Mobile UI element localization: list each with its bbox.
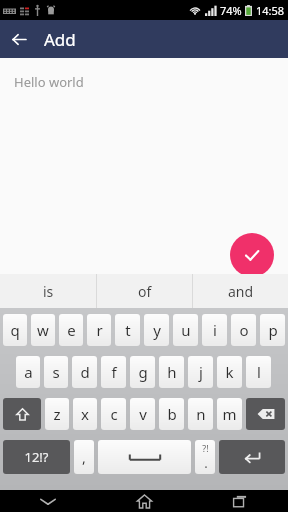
button[interactable]: i (202, 314, 227, 346)
button[interactable]: and (193, 274, 288, 308)
staticText: Add (44, 28, 76, 51)
button[interactable]: Back (0, 490, 96, 512)
button[interactable]: is (0, 274, 96, 308)
button[interactable]: w (31, 314, 55, 346)
staticText: 74% (220, 3, 242, 18)
button[interactable]: u (173, 314, 198, 346)
button[interactable]: a (16, 356, 40, 388)
staticText: ?! (202, 442, 209, 454)
staticText: u (181, 320, 191, 340)
staticText: s (52, 362, 60, 382)
staticText: Hello world (14, 73, 84, 91)
staticText: j (199, 362, 203, 382)
button[interactable]: q (3, 314, 27, 346)
button[interactable]: Backspace (246, 398, 285, 430)
staticText: 14:58 (256, 3, 285, 18)
button[interactable]: e (59, 314, 83, 346)
button[interactable]: s (44, 356, 68, 388)
staticText: k (225, 362, 234, 382)
button[interactable]: r (87, 314, 111, 346)
staticText: g (138, 362, 148, 382)
button[interactable]: , (74, 440, 94, 474)
button[interactable]: ?! (195, 440, 215, 474)
staticText: f (111, 362, 117, 382)
button[interactable]: g (130, 356, 155, 388)
button[interactable]: 12!? (3, 440, 70, 474)
button[interactable]: Confirm (230, 233, 274, 277)
staticText: i (213, 320, 217, 340)
staticText: v (139, 404, 147, 424)
staticText: . (204, 454, 208, 472)
button[interactable]: n (188, 398, 213, 430)
staticText: is (43, 282, 54, 301)
staticText: w (37, 320, 49, 340)
button[interactable]: d (72, 356, 97, 388)
button[interactable]: v (130, 398, 155, 430)
staticText: t (125, 320, 131, 340)
button[interactable]: Recents (192, 490, 288, 512)
staticText: h (167, 362, 177, 382)
button[interactable]: j (188, 356, 213, 388)
button[interactable]: c (101, 398, 126, 430)
staticText: and (228, 282, 254, 301)
staticText: c (110, 404, 118, 424)
staticText: d (80, 362, 90, 382)
staticText: e (67, 320, 76, 340)
staticText: , (82, 448, 86, 467)
staticText: z (53, 404, 61, 424)
staticText: p (268, 320, 278, 340)
button[interactable]: o (231, 314, 256, 346)
button[interactable]: f (101, 356, 126, 388)
button[interactable]: z (45, 398, 69, 430)
staticText: r (96, 320, 103, 340)
button[interactable]: m (217, 398, 242, 430)
button[interactable]: Home (96, 490, 192, 512)
staticText: 12!? (24, 448, 49, 466)
staticText: b (167, 404, 177, 424)
staticText: q (10, 320, 20, 340)
button[interactable]: Shift (3, 398, 41, 430)
staticText: l (257, 362, 261, 382)
button[interactable]: k (217, 356, 242, 388)
button[interactable]: Space (98, 440, 191, 474)
staticText: m (222, 404, 237, 424)
staticText: a (24, 362, 33, 382)
staticText: y (153, 320, 161, 340)
button[interactable]: b (159, 398, 184, 430)
button[interactable]: t (115, 314, 140, 346)
button[interactable]: Back (0, 20, 38, 58)
staticText: n (196, 404, 206, 424)
button[interactable]: x (73, 398, 97, 430)
staticText: of (138, 282, 152, 301)
button[interactable]: y (144, 314, 169, 346)
button[interactable]: of (97, 274, 192, 308)
staticText: x (81, 404, 89, 424)
button[interactable]: h (159, 356, 184, 388)
staticText: o (239, 320, 249, 340)
button[interactable]: Enter (219, 440, 285, 474)
button[interactable]: l (246, 356, 271, 388)
button[interactable]: p (260, 314, 285, 346)
